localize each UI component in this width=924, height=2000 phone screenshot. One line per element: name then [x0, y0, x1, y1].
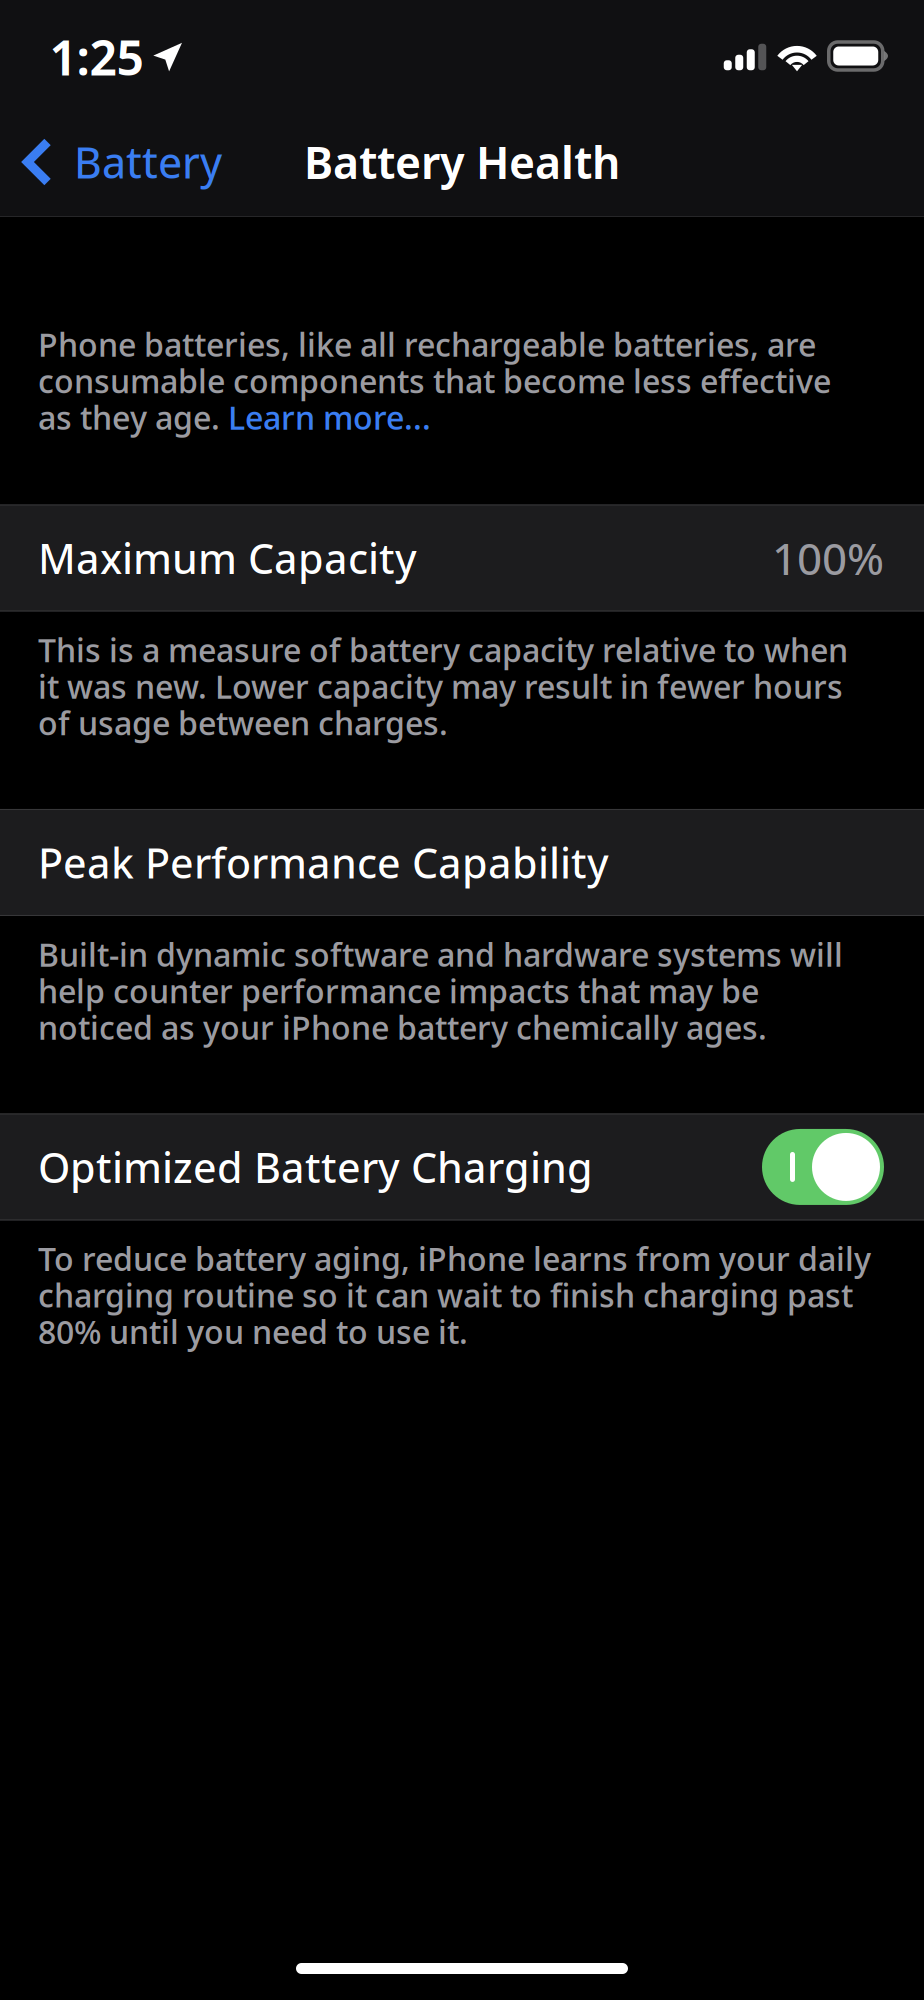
staticText: Phone batteries, like all rechargeable b…	[38, 323, 831, 438]
staticText: 1:25	[49, 24, 143, 90]
button[interactable]: Battery	[0, 108, 238, 216]
staticText: Maximum Capacity	[38, 530, 417, 586]
staticText: Optimized Battery Charging	[38, 1139, 593, 1195]
staticText: This is a measure of battery capacity re…	[38, 628, 848, 744]
button[interactable]: Peak Performance Capability	[0, 809, 924, 916]
staticText: Battery Health	[304, 132, 620, 192]
staticText: Peak Performance Capability	[38, 834, 609, 891]
button[interactable]: Maximum Capacity	[0, 504, 924, 611]
staticText: To reduce battery aging, iPhone learns f…	[38, 1237, 871, 1353]
staticText: 100%	[772, 528, 884, 588]
staticText: Battery	[74, 133, 222, 191]
staticText: Built-in dynamic software and hardware s…	[38, 933, 843, 1048]
button[interactable]: Optimized Battery Charging	[762, 1129, 884, 1205]
